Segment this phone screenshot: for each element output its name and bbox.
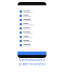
staticText: sit amet consectetur xyxy=(18,62,45,66)
staticText: Lorem ipsum dolor xyxy=(19,58,45,62)
